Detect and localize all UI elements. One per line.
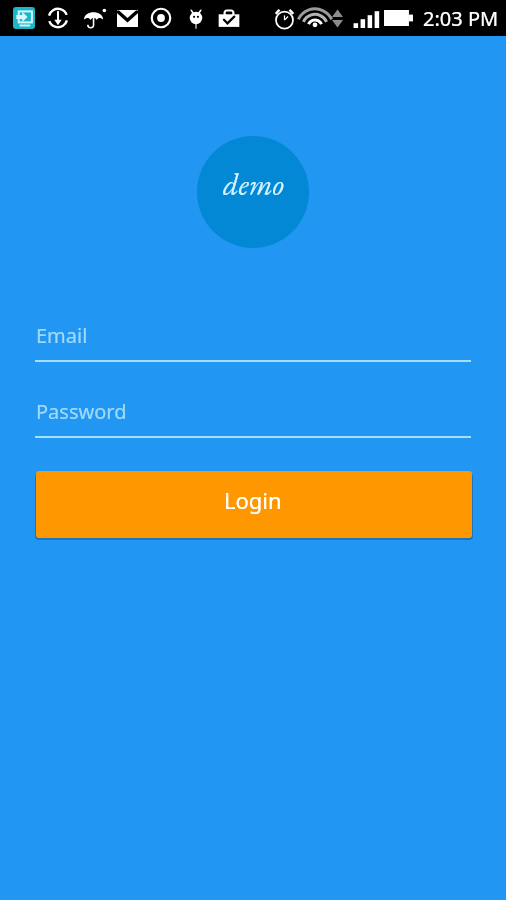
staticText: Password xyxy=(36,398,127,425)
button[interactable]: Password xyxy=(35,394,471,439)
staticText: 2:03 PM xyxy=(423,5,499,32)
other: Screen cast xyxy=(6,0,42,36)
other: Wi-Fi xyxy=(297,0,333,36)
other: Developer mode xyxy=(178,0,214,36)
other: Data transfer xyxy=(319,0,355,36)
other: demo logo xyxy=(197,136,309,248)
other: Battery xyxy=(380,0,416,36)
other: Alarm set xyxy=(266,0,302,36)
other: New mail xyxy=(109,0,145,36)
other: Weather xyxy=(77,0,113,36)
staticText: Email xyxy=(36,322,88,349)
staticText: demo xyxy=(223,165,284,204)
staticText: Login xyxy=(224,485,282,515)
other: Mobile signal xyxy=(347,0,383,36)
other: Downloading xyxy=(40,0,76,36)
other: Recording xyxy=(143,0,179,36)
button[interactable]: Login xyxy=(36,471,472,538)
other: Work profile xyxy=(211,0,247,36)
button[interactable]: Email xyxy=(35,318,471,363)
